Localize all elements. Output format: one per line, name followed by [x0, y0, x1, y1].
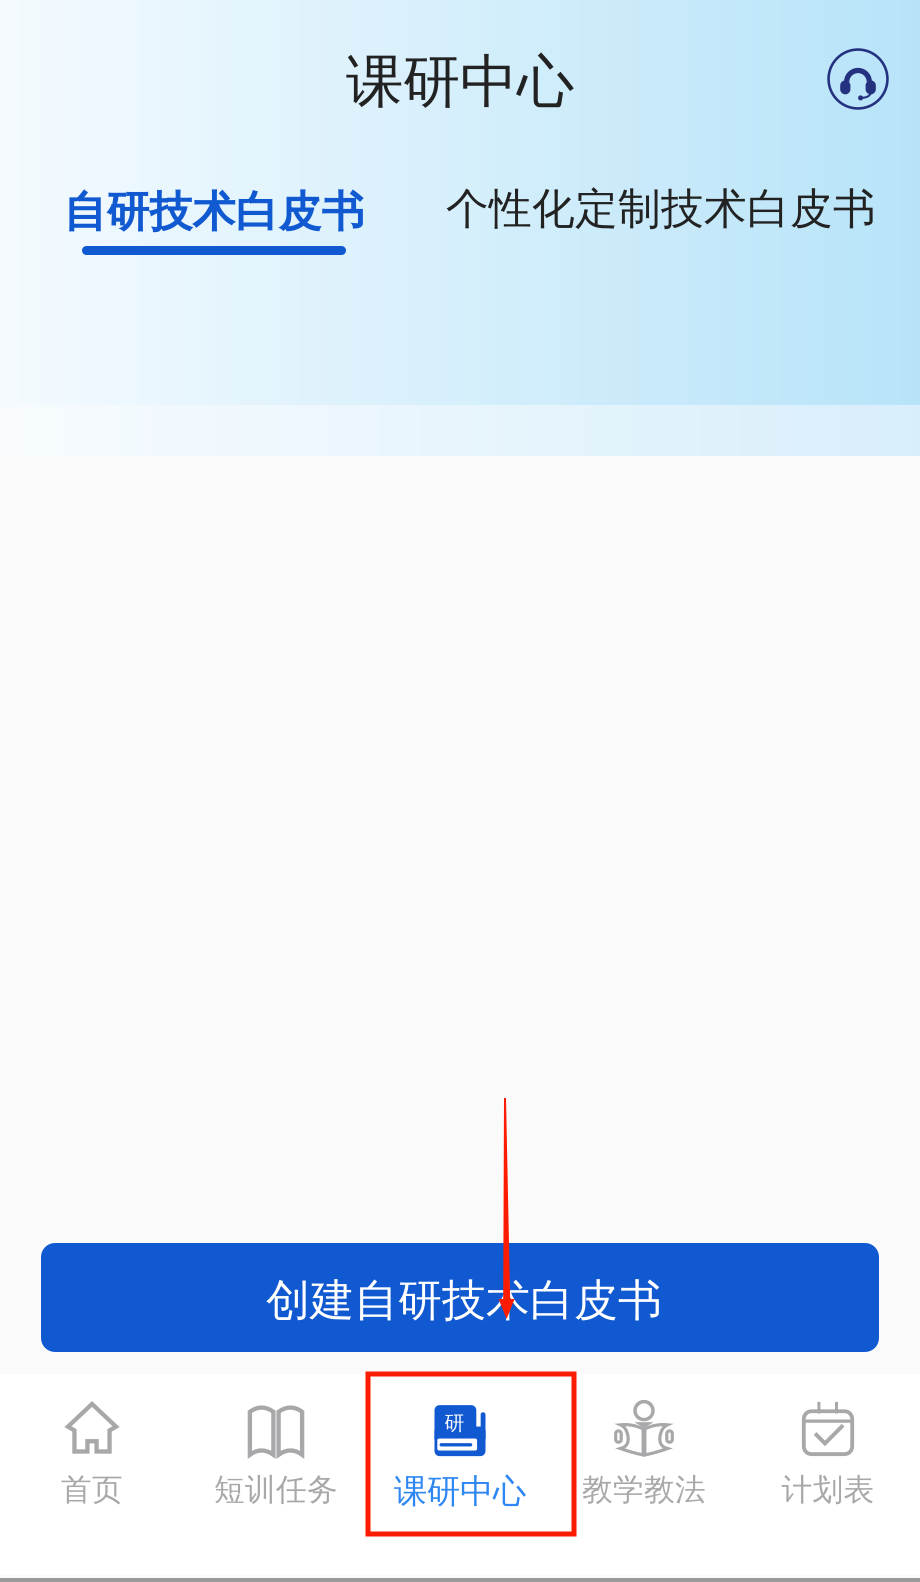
staticText: 首页	[61, 1471, 123, 1509]
staticText: 研	[444, 1411, 464, 1435]
staticText: 短训任务	[214, 1471, 338, 1509]
button[interactable]: 计划表	[736, 1374, 920, 1575]
button[interactable]: 自研技术白皮书	[49, 184, 379, 258]
button[interactable]: 个性化定制技术白皮书	[441, 184, 881, 258]
staticText: 教学教法	[582, 1471, 706, 1509]
button[interactable]: 创建自研技术白皮书	[41, 1243, 879, 1352]
button[interactable]: 教学教法	[552, 1374, 736, 1575]
button[interactable]: 研	[368, 1374, 552, 1575]
staticText: 课研中心	[394, 1471, 526, 1512]
staticText: 计划表	[781, 1471, 874, 1509]
button[interactable]: 在线客服	[815, 36, 901, 122]
button[interactable]: 首页	[0, 1374, 184, 1575]
staticText: 个性化定制技术白皮书	[446, 183, 876, 235]
staticText: 课研中心	[346, 47, 574, 117]
staticText: 自研技术白皮书	[63, 186, 364, 238]
button[interactable]: 短训任务	[184, 1374, 368, 1575]
staticText: 创建自研技术白皮书	[266, 1273, 662, 1327]
